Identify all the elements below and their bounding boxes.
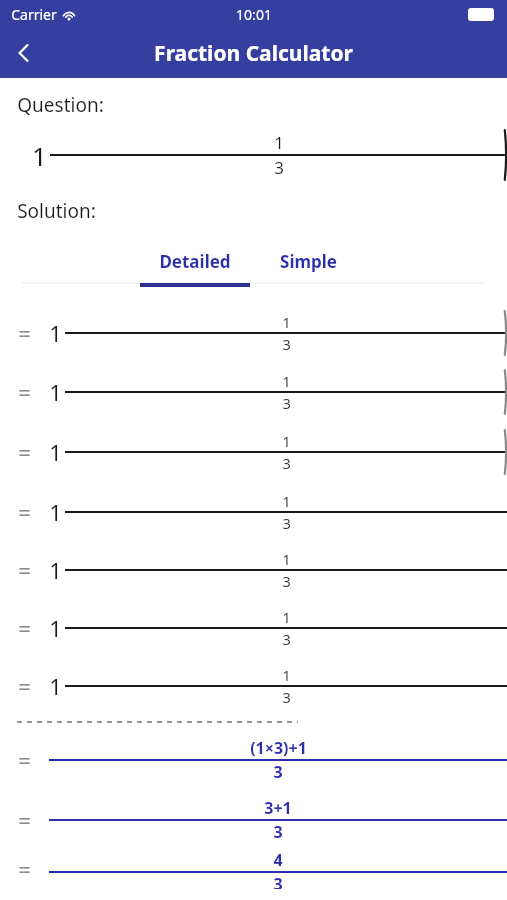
- staticText: 3: [282, 687, 291, 707]
- staticText: Simple: [280, 250, 337, 273]
- staticText: 1: [32, 138, 47, 173]
- staticText: 3: [273, 761, 283, 783]
- staticText: 1: [274, 131, 284, 154]
- staticText: 3: [274, 156, 284, 179]
- staticText: 3: [282, 571, 291, 591]
- staticText: =: [18, 318, 31, 348]
- staticText: Question:: [17, 92, 104, 118]
- staticText: 1: [282, 371, 291, 391]
- staticText: (1×3)+1: [250, 737, 307, 759]
- button[interactable]: Detailed: [145, 246, 245, 277]
- staticText: 1: [49, 497, 62, 527]
- staticText: 3: [273, 821, 283, 843]
- staticText: =: [18, 745, 31, 775]
- staticText: =: [18, 555, 31, 585]
- staticText: 1: [49, 377, 62, 407]
- staticText: =: [18, 805, 31, 835]
- staticText: 1: [282, 431, 291, 451]
- staticText: 1: [282, 665, 291, 685]
- staticText: 1: [49, 437, 62, 467]
- staticText: 3: [273, 873, 283, 889]
- staticText: =: [18, 854, 31, 884]
- staticText: 1: [49, 671, 62, 701]
- staticText: 1: [282, 491, 291, 511]
- staticText: 3+1: [264, 797, 292, 819]
- staticText: =: [18, 613, 31, 643]
- staticText: 3: [282, 393, 291, 413]
- button[interactable]: Simple: [268, 246, 349, 277]
- staticText: 1: [282, 607, 291, 627]
- staticText: 1: [282, 549, 291, 569]
- button[interactable]: Back: [0, 29, 48, 77]
- staticText: 4: [273, 849, 283, 871]
- staticText: =: [18, 377, 31, 407]
- staticText: =: [18, 497, 31, 527]
- staticText: 3: [282, 513, 291, 533]
- staticText: 3: [282, 453, 291, 473]
- staticText: 1: [49, 555, 62, 585]
- staticText: 3: [282, 334, 291, 354]
- staticText: 1: [49, 318, 62, 348]
- staticText: 1: [282, 312, 291, 332]
- staticText: =: [18, 671, 31, 701]
- staticText: 10:01: [236, 5, 272, 24]
- staticText: Solution:: [17, 198, 96, 224]
- staticText: Fraction Calculator: [154, 39, 353, 68]
- staticText: Detailed: [159, 250, 231, 273]
- staticText: =: [18, 437, 31, 467]
- staticText: 1: [49, 613, 62, 643]
- staticText: 3: [282, 629, 291, 649]
- staticText: Carrier: [11, 5, 57, 24]
